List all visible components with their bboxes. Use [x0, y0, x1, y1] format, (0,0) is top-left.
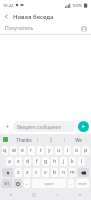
button[interactable]: f: [33, 157, 40, 166]
button[interactable]: r: [28, 146, 35, 155]
staticText: 10:22: [3, 3, 14, 8]
staticText: l: [81, 158, 83, 165]
button[interactable]: n: [60, 168, 67, 177]
button[interactable]: space: [32, 179, 66, 188]
staticText: c: [35, 169, 38, 176]
staticText: space: [44, 181, 54, 186]
button[interactable]: Back: [0, 10, 13, 23]
button[interactable]: z: [15, 168, 22, 177]
staticText: Новая беседа: [13, 13, 54, 21]
button[interactable]: Thanks: [11, 134, 37, 145]
staticText: o: [75, 147, 79, 154]
staticText: b: [53, 169, 57, 176]
button[interactable]: Home: [22, 189, 45, 200]
staticText: .: [70, 180, 72, 187]
button[interactable]: Back: [68, 189, 91, 200]
staticText: We: [75, 137, 82, 143]
staticText: z: [17, 169, 20, 176]
button[interactable]: return: [76, 179, 89, 188]
staticText: y: [48, 147, 51, 154]
button[interactable]: p: [82, 146, 89, 155]
staticText: h: [53, 158, 57, 165]
button[interactable]: l: [78, 157, 85, 166]
staticText: g: [44, 158, 48, 165]
button[interactable]: e: [19, 146, 26, 155]
staticText: w: [12, 147, 16, 154]
button[interactable]: o: [73, 146, 80, 155]
button[interactable]: Recents: [0, 189, 22, 200]
button[interactable]: i: [64, 146, 71, 155]
staticText: e: [21, 147, 24, 154]
button[interactable]: Получатель: [0, 23, 91, 34]
staticText: s: [17, 158, 20, 165]
button[interactable]: Send: [78, 121, 89, 132]
button[interactable]: Contacts: [79, 24, 88, 33]
staticText: I: [50, 137, 52, 143]
staticText: return: [78, 182, 87, 186]
staticText: Получатель: [5, 25, 34, 32]
button[interactable]: Shift: [2, 168, 13, 177]
button[interactable]: a: [6, 157, 13, 166]
staticText: i: [67, 147, 69, 154]
staticText: f: [36, 158, 38, 165]
button[interactable]: Symbols: [2, 179, 12, 188]
button[interactable]: Backspace: [78, 168, 89, 177]
button[interactable]: k: [69, 157, 76, 166]
staticText: !#1: [4, 181, 10, 186]
staticText: j: [63, 158, 65, 165]
staticText: u: [57, 147, 61, 154]
staticText: t: [40, 147, 42, 154]
staticText: r: [30, 147, 33, 154]
button[interactable]: t: [37, 146, 44, 155]
button[interactable]: w: [10, 146, 17, 155]
staticText: d: [26, 158, 30, 165]
button[interactable]: Emoji: [14, 179, 22, 188]
button[interactable]: Keyboard settings: [0, 134, 11, 145]
staticText: x: [26, 169, 29, 176]
staticText: a: [8, 158, 11, 165]
button[interactable]: ,: [24, 179, 30, 188]
button[interactable]: g: [42, 157, 49, 166]
button[interactable]: j: [60, 157, 67, 166]
button[interactable]: m: [69, 168, 76, 177]
button[interactable]: h: [51, 157, 58, 166]
staticText: Введите сообщение: [17, 124, 61, 130]
button[interactable]: .: [68, 179, 74, 188]
button[interactable]: v: [42, 168, 49, 177]
button[interactable]: Введите сообщение: [13, 121, 76, 132]
staticText: Thanks: [16, 137, 32, 143]
button[interactable]: b: [51, 168, 58, 177]
button[interactable]: c: [33, 168, 40, 177]
staticText: q: [3, 147, 7, 154]
staticText: m: [70, 169, 75, 176]
staticText: v: [44, 169, 47, 176]
button[interactable]: We: [65, 134, 91, 145]
button[interactable]: d: [24, 157, 31, 166]
staticText: k: [71, 158, 74, 165]
button[interactable]: s: [15, 157, 22, 166]
button[interactable]: Add attachment: [2, 121, 13, 132]
button[interactable]: x: [24, 168, 31, 177]
staticText: ,: [26, 180, 28, 187]
button[interactable]: q: [2, 146, 8, 155]
button[interactable]: u: [55, 146, 62, 155]
button[interactable]: I: [38, 134, 64, 145]
staticText: 100%: [72, 3, 83, 8]
staticText: n: [62, 169, 66, 176]
button[interactable]: y: [46, 146, 53, 155]
staticText: p: [84, 147, 88, 154]
